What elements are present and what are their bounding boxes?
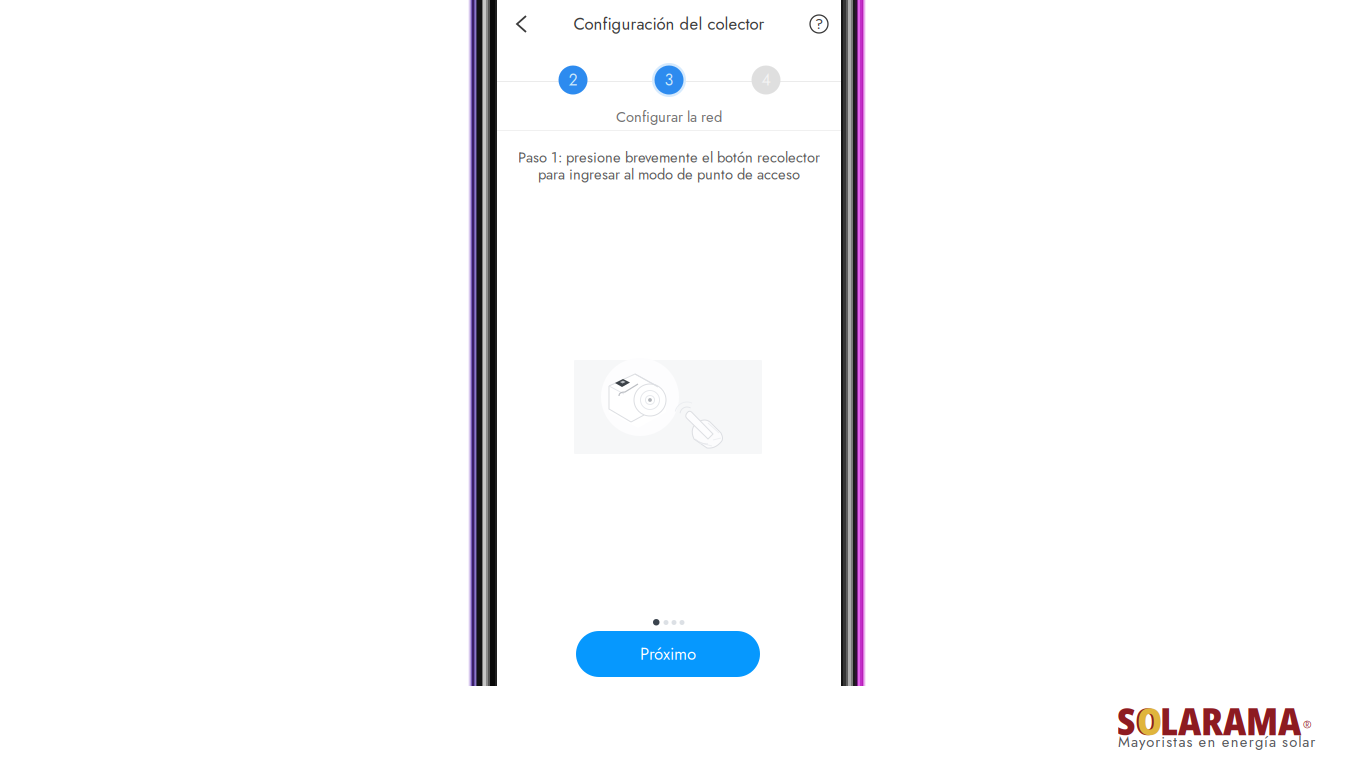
staticText: SOLARAMA [1117,695,1301,746]
staticText: Paso 1: presione brevemente el botón rec… [518,147,820,168]
staticText: Próximo [640,642,696,666]
staticText: 2 [568,68,577,91]
staticText: 4 [761,68,770,91]
button[interactable]: Próximo [576,631,760,677]
staticText: O [1137,695,1162,746]
staticText: Mayoristas en energía solar [1118,731,1315,753]
staticText: Configuración del colector [573,12,764,36]
staticText: Configurar la red [616,106,722,128]
button[interactable]: Help [799,10,839,38]
staticText: ? [815,13,823,35]
staticText: 3 [664,68,673,91]
staticText: ® [1303,717,1312,732]
staticText: para ingresar al modo de punto de acceso [538,164,800,185]
button[interactable]: Back [505,10,549,38]
